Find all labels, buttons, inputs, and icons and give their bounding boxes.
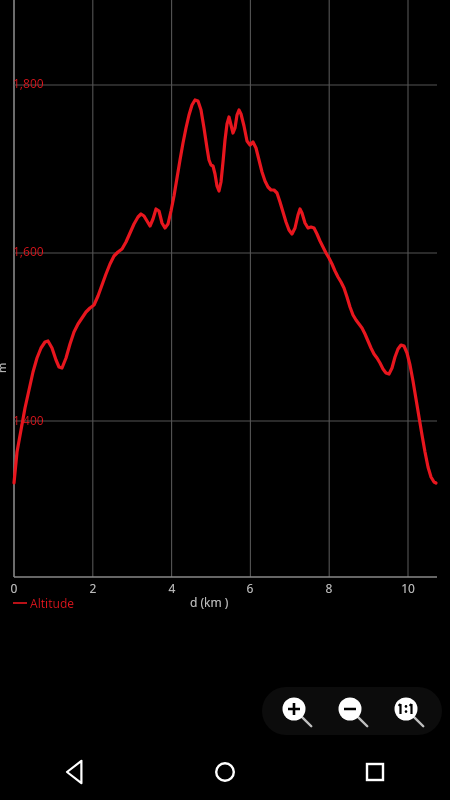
button[interactable]: Altitude: [12, 595, 81, 611]
button[interactable]: Zoom in: [274, 689, 318, 733]
staticText: 6: [238, 580, 262, 596]
staticText: 8: [317, 580, 341, 596]
staticText: 1,800: [13, 75, 44, 91]
staticText: d (km ): [190, 594, 229, 610]
button[interactable]: Recents: [300, 744, 450, 800]
staticText: 0: [2, 580, 26, 596]
staticText: Altitude: [30, 595, 75, 611]
staticText: 1,400: [13, 412, 44, 428]
staticText: 4: [160, 580, 184, 596]
staticText: 2: [81, 580, 105, 596]
staticText: 1,600: [13, 243, 44, 259]
staticText: m: [0, 362, 9, 373]
button[interactable]: Zoom out: [330, 689, 374, 733]
button[interactable]: Back: [0, 744, 150, 800]
button[interactable]: Home: [150, 744, 300, 800]
staticText: 10: [396, 580, 420, 596]
button[interactable]: Reset zoom: [386, 689, 430, 733]
